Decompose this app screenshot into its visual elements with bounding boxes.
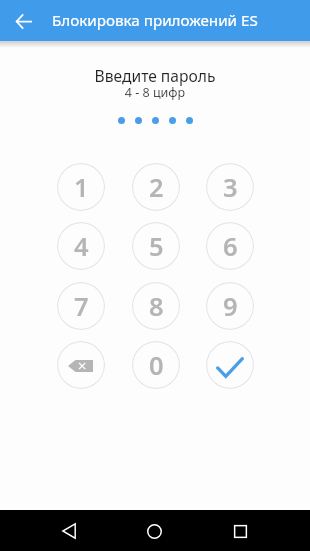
button[interactable]: 8 xyxy=(132,282,180,330)
button[interactable]: 3 xyxy=(206,163,254,211)
staticText: 4 - 8 цифр xyxy=(0,84,310,101)
staticText: 0 xyxy=(149,348,164,383)
staticText: 6 xyxy=(223,229,238,264)
staticText: Введите пароль xyxy=(0,65,310,86)
button[interactable]: Recent apps xyxy=(222,513,258,549)
button[interactable]: Home xyxy=(136,513,172,549)
button[interactable]: 5 xyxy=(132,222,180,270)
staticText: 5 xyxy=(149,229,164,264)
staticText: Блокировка приложений ES xyxy=(52,10,258,31)
staticText: 7 xyxy=(74,289,89,324)
button[interactable]: Confirm xyxy=(206,341,254,389)
button[interactable]: Back xyxy=(51,513,87,549)
staticText: 2 xyxy=(149,170,164,205)
button[interactable]: 7 xyxy=(57,282,105,330)
button[interactable]: 6 xyxy=(206,222,254,270)
button[interactable]: 4 xyxy=(57,222,105,270)
button[interactable]: 9 xyxy=(206,282,254,330)
staticText: 1 xyxy=(74,170,89,205)
button[interactable]: 1 xyxy=(57,163,105,211)
button[interactable]: Delete xyxy=(57,341,105,389)
button[interactable]: 2 xyxy=(132,163,180,211)
staticText: 4 xyxy=(74,229,89,264)
staticText: 3 xyxy=(223,170,238,205)
staticText: 8 xyxy=(149,289,164,324)
staticText: 9 xyxy=(223,289,238,324)
button[interactable]: 0 xyxy=(132,341,180,389)
button[interactable]: Back xyxy=(6,3,42,39)
